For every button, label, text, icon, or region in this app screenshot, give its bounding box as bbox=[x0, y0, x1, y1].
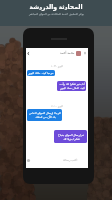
staticText: أنا بخير شكرا لك وأنت bbox=[59, 82, 85, 86]
staticText: الرجاء إرسال الموقع الخاص bbox=[29, 111, 61, 115]
staticText: كيف الحال معك اليوم bbox=[60, 86, 85, 90]
staticText: مرحبا كيف حالك اليوم bbox=[28, 71, 54, 75]
staticText: اليوم ١١:٠٠ bbox=[26, 104, 88, 108]
button[interactable]: مرحبا كيف حالك اليوم bbox=[27, 70, 55, 76]
button[interactable]: Back bbox=[26, 51, 31, 56]
staticText: تم إرسال الموقع بنجاح bbox=[58, 133, 84, 137]
button[interactable]: الرجاء إرسال الموقع الخاص bbox=[27, 109, 62, 121]
button[interactable]: Attach bbox=[26, 158, 31, 163]
staticText: يوفر التطبيق خدمة المحادثة مع الموقع الم… bbox=[29, 12, 84, 16]
staticText: محمد أحمد bbox=[60, 51, 75, 55]
button[interactable]: More options bbox=[83, 51, 87, 55]
staticText: اليوم ١٠:٣٠ bbox=[26, 64, 88, 68]
staticText: اكتب رسالة bbox=[63, 158, 78, 162]
button[interactable]: أنا بخير شكرا لك وأنت bbox=[57, 81, 86, 91]
staticText: بك الآن من فضلك bbox=[35, 115, 56, 119]
staticText: شكرا جزيلا لك bbox=[63, 137, 80, 141]
staticText: المحادثة والدردشة bbox=[29, 3, 83, 11]
button[interactable]: تم إرسال الموقع بنجاح bbox=[54, 130, 87, 143]
